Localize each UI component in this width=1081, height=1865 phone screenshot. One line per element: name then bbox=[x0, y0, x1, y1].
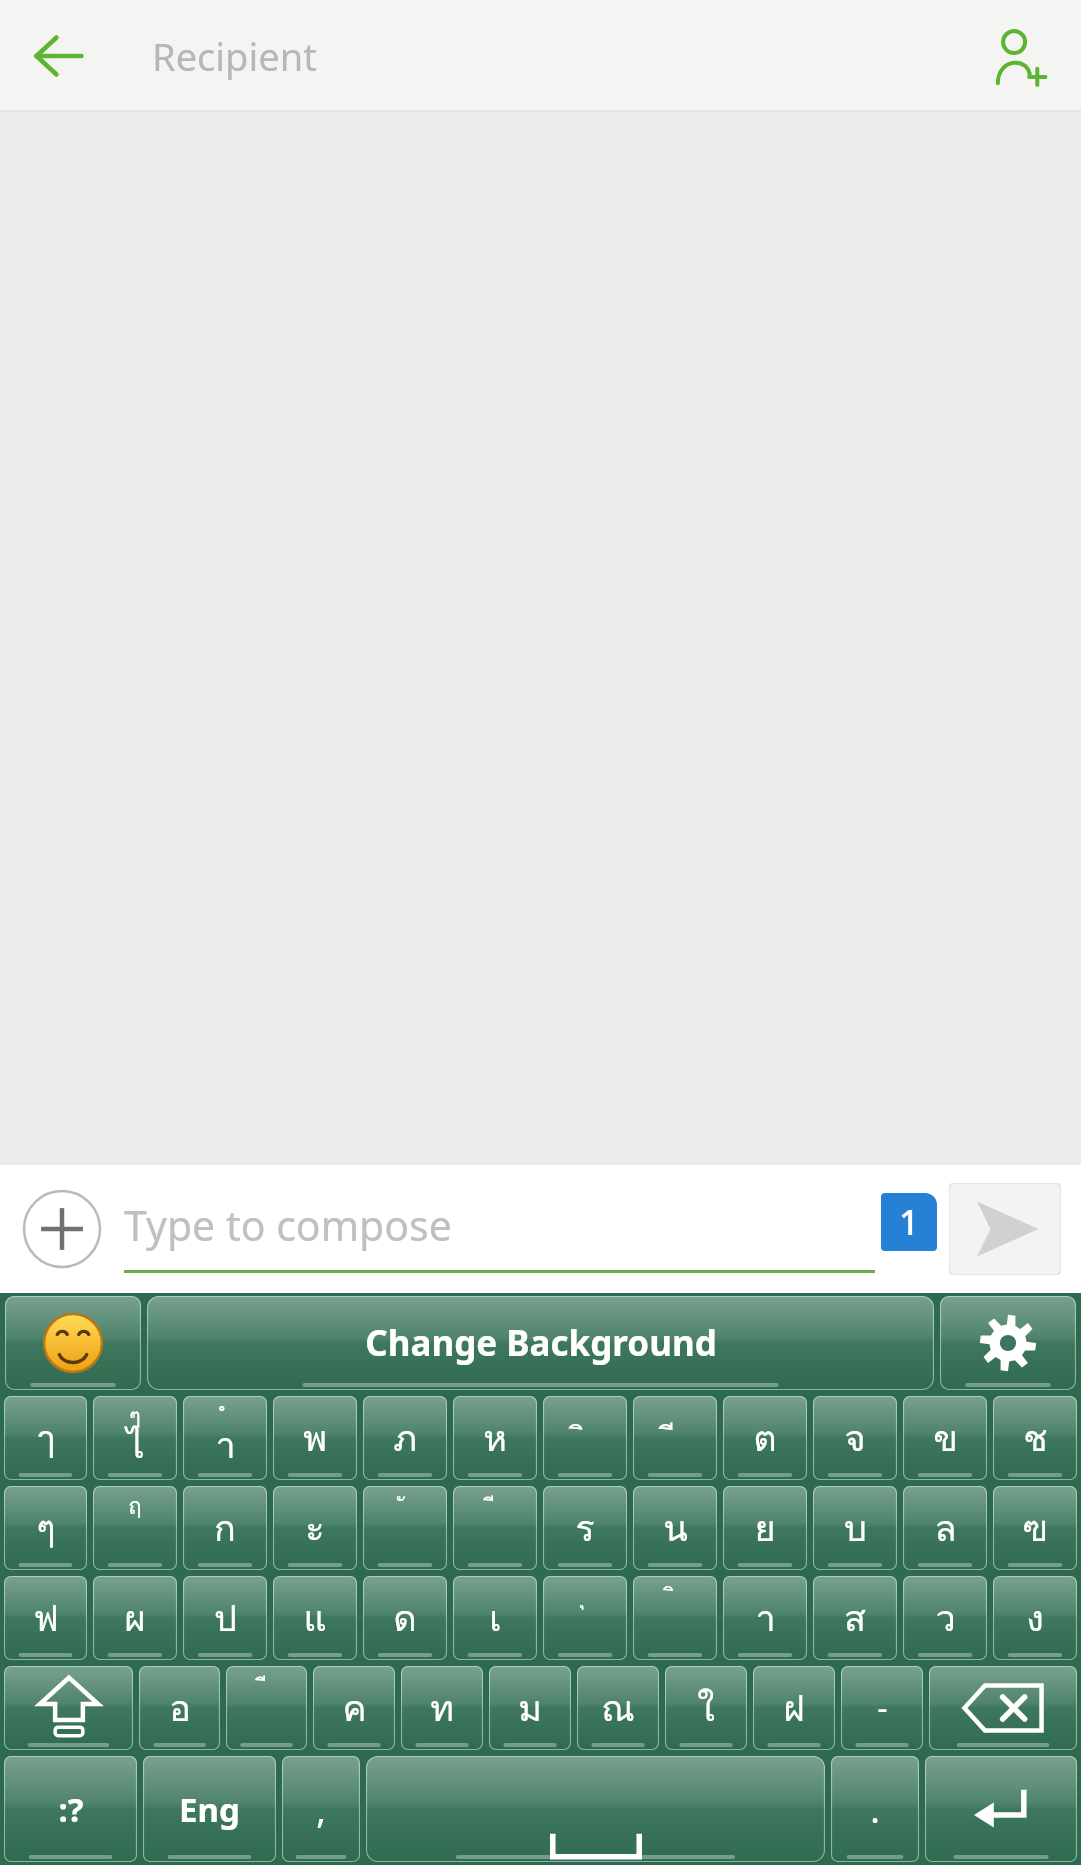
button[interactable]: . bbox=[831, 1756, 919, 1862]
button[interactable]: ๅ bbox=[4, 1396, 87, 1480]
button[interactable]: ต bbox=[723, 1396, 807, 1480]
staticText: Change Background bbox=[365, 1319, 717, 1367]
button[interactable]: ค bbox=[313, 1666, 395, 1750]
button[interactable]: ุ bbox=[543, 1576, 627, 1660]
button[interactable]: ๆ bbox=[93, 1396, 177, 1480]
button[interactable]: ใ bbox=[665, 1666, 747, 1750]
staticText: ฤ bbox=[128, 1489, 142, 1524]
button[interactable]: ิ bbox=[633, 1576, 717, 1660]
staticText: ใ bbox=[697, 1680, 715, 1737]
button[interactable]: ๆ bbox=[4, 1486, 87, 1570]
staticText: . bbox=[870, 1785, 880, 1834]
staticText: ห bbox=[483, 1410, 507, 1467]
staticText: ว bbox=[935, 1590, 956, 1647]
staticText: อ bbox=[169, 1680, 191, 1737]
button[interactable]: ั bbox=[363, 1486, 447, 1570]
staticText: ค bbox=[342, 1680, 367, 1737]
button[interactable]: ด bbox=[363, 1576, 447, 1660]
staticText: ก bbox=[214, 1500, 236, 1557]
staticText: ะ bbox=[305, 1500, 325, 1557]
staticText: ต bbox=[753, 1410, 777, 1467]
button[interactable]: Change Background bbox=[147, 1296, 934, 1390]
button[interactable]: อ bbox=[139, 1666, 220, 1750]
button[interactable]: ช bbox=[993, 1396, 1077, 1480]
staticText: ฟ bbox=[33, 1590, 59, 1647]
button[interactable] bbox=[5, 1296, 141, 1390]
staticText: ล bbox=[934, 1500, 957, 1557]
button[interactable] bbox=[940, 1296, 1076, 1390]
button[interactable]: ํ bbox=[183, 1396, 267, 1480]
button[interactable]: เ bbox=[453, 1576, 537, 1660]
button[interactable]: ข bbox=[903, 1396, 987, 1480]
button[interactable]: ผ bbox=[93, 1576, 177, 1660]
button[interactable]: ล bbox=[903, 1486, 987, 1570]
other: Backspace bbox=[929, 1666, 1077, 1750]
other: Space bbox=[366, 1756, 825, 1862]
button[interactable]: ฝ bbox=[753, 1666, 835, 1750]
button[interactable]: - bbox=[841, 1666, 923, 1750]
staticText: ๆ bbox=[36, 1500, 56, 1557]
button[interactable]: ฟ bbox=[4, 1576, 87, 1660]
button[interactable]: ิ bbox=[543, 1396, 627, 1480]
button[interactable]: Eng bbox=[143, 1756, 276, 1862]
staticText: ๆ bbox=[129, 1399, 141, 1434]
staticText: ส bbox=[844, 1590, 866, 1647]
button[interactable]: Back bbox=[16, 14, 100, 98]
button[interactable]: พ bbox=[273, 1396, 357, 1480]
staticText: 1 bbox=[899, 1198, 920, 1246]
staticText: Eng bbox=[179, 1787, 240, 1832]
button[interactable]: จ bbox=[813, 1396, 897, 1480]
button[interactable]: Enter bbox=[925, 1756, 1077, 1862]
button[interactable]: ง bbox=[993, 1576, 1077, 1660]
button[interactable]: ว bbox=[903, 1576, 987, 1660]
button[interactable]: ป bbox=[183, 1576, 267, 1660]
button[interactable]: Add recipient bbox=[969, 8, 1065, 104]
button[interactable]: :? bbox=[4, 1756, 137, 1862]
button[interactable]: ณ bbox=[577, 1666, 659, 1750]
staticText: บ bbox=[844, 1500, 867, 1557]
button[interactable]: ภ bbox=[363, 1396, 447, 1480]
button[interactable]: ท bbox=[401, 1666, 483, 1750]
staticText: , bbox=[316, 1785, 326, 1834]
button[interactable]: ก bbox=[183, 1486, 267, 1570]
button[interactable]: Add attachment bbox=[20, 1187, 104, 1271]
staticText: ภ bbox=[393, 1410, 417, 1467]
staticText: ไ bbox=[126, 1417, 145, 1474]
button[interactable]: ี bbox=[453, 1486, 537, 1570]
button[interactable]: ม bbox=[489, 1666, 571, 1750]
staticText: ข bbox=[933, 1410, 958, 1467]
button[interactable]: Backspace bbox=[929, 1666, 1077, 1750]
staticText: น bbox=[663, 1500, 688, 1557]
staticText: แ bbox=[303, 1590, 327, 1647]
button[interactable]: ห bbox=[453, 1396, 537, 1480]
button[interactable]: า bbox=[723, 1576, 807, 1660]
button[interactable]: ี bbox=[226, 1666, 307, 1750]
staticText: า bbox=[215, 1417, 236, 1474]
button[interactable]: Send bbox=[949, 1183, 1061, 1275]
staticText: จ bbox=[844, 1410, 866, 1467]
button[interactable]: บ bbox=[813, 1486, 897, 1570]
button[interactable]: , bbox=[282, 1756, 360, 1862]
staticText: ฃ bbox=[1022, 1500, 1048, 1557]
button[interactable]: ะ bbox=[273, 1486, 357, 1570]
staticText: ป bbox=[214, 1590, 237, 1647]
button[interactable]: ย bbox=[723, 1486, 807, 1570]
button[interactable]: ฤ bbox=[93, 1486, 177, 1570]
button[interactable]: ฃ bbox=[993, 1486, 1077, 1570]
button[interactable]: แ bbox=[273, 1576, 357, 1660]
staticText: ท bbox=[430, 1680, 454, 1737]
staticText: พ bbox=[303, 1410, 327, 1467]
button[interactable]: Shift bbox=[4, 1666, 133, 1750]
button[interactable]: Space bbox=[366, 1756, 825, 1862]
staticText: ย bbox=[754, 1500, 776, 1557]
button[interactable]: Type to compose bbox=[124, 1165, 875, 1293]
staticText: ช bbox=[1023, 1410, 1048, 1467]
button[interactable]: น bbox=[633, 1486, 717, 1570]
staticText: ฝ bbox=[783, 1680, 805, 1737]
button[interactable]: ร bbox=[543, 1486, 627, 1570]
staticText: Type to compose bbox=[124, 1197, 452, 1253]
button[interactable]: ี bbox=[633, 1396, 717, 1480]
staticText: ผ bbox=[124, 1590, 146, 1647]
staticText: ม bbox=[518, 1680, 542, 1737]
button[interactable]: ส bbox=[813, 1576, 897, 1660]
